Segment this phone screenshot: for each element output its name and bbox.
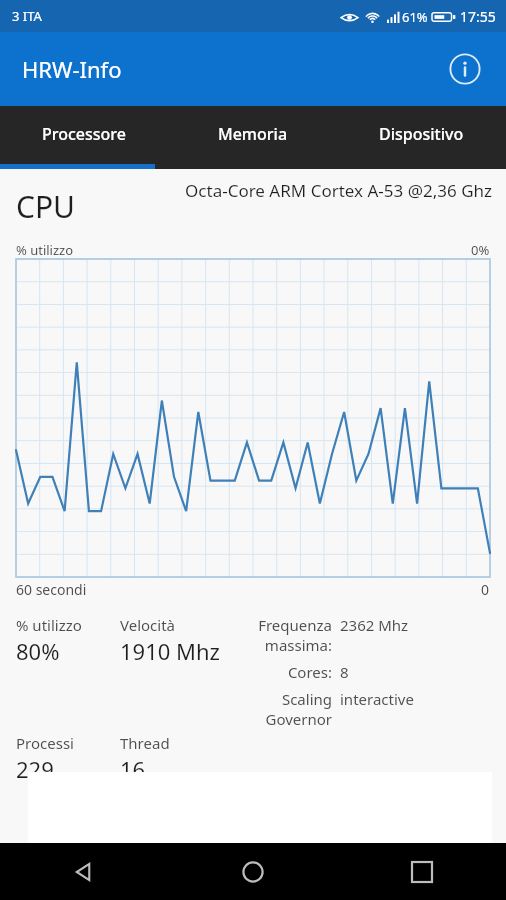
staticText: Thread xyxy=(120,733,170,753)
staticText: interactive xyxy=(340,689,414,709)
button[interactable]: Home xyxy=(168,843,337,900)
staticText: Processi xyxy=(16,733,74,753)
button[interactable]: Info xyxy=(442,46,488,92)
button[interactable]: Recents xyxy=(337,843,506,900)
staticText: 17:55 xyxy=(460,7,496,26)
button[interactable]: Processore xyxy=(0,106,168,169)
staticText: 229 xyxy=(16,754,54,784)
button[interactable]: Dispositivo xyxy=(337,106,506,169)
button[interactable]: Back xyxy=(0,843,168,900)
staticText: 3 ITA xyxy=(12,7,42,25)
staticText: 0% xyxy=(471,241,490,259)
staticText: 1910 Mhz xyxy=(120,636,220,666)
staticText: 60 secondi xyxy=(16,580,87,599)
staticText: CPU xyxy=(16,186,76,227)
staticText: Octa-Core ARM Cortex A-53 @2,36 Ghz xyxy=(88,179,492,202)
staticText: Processore xyxy=(42,123,126,145)
staticText: 16 xyxy=(120,754,146,784)
button[interactable]: Memoria xyxy=(168,106,337,169)
staticText: 80% xyxy=(16,636,60,666)
staticText: Memoria xyxy=(218,123,288,145)
staticText: Velocità xyxy=(120,615,176,635)
staticText: 61% xyxy=(402,8,428,26)
staticText: 0 xyxy=(481,580,490,599)
staticText: Scaling Governor xyxy=(232,689,332,729)
staticText: % utilizzo xyxy=(16,615,82,635)
staticText: Dispositivo xyxy=(379,123,464,145)
staticText: Frequenza massima: xyxy=(232,615,332,655)
staticText: 2362 Mhz xyxy=(340,615,409,635)
staticText: 8 xyxy=(340,662,349,682)
staticText: HRW-Info xyxy=(22,54,122,84)
staticText: Cores: xyxy=(232,662,332,682)
staticText: % utilizzo xyxy=(16,241,74,259)
